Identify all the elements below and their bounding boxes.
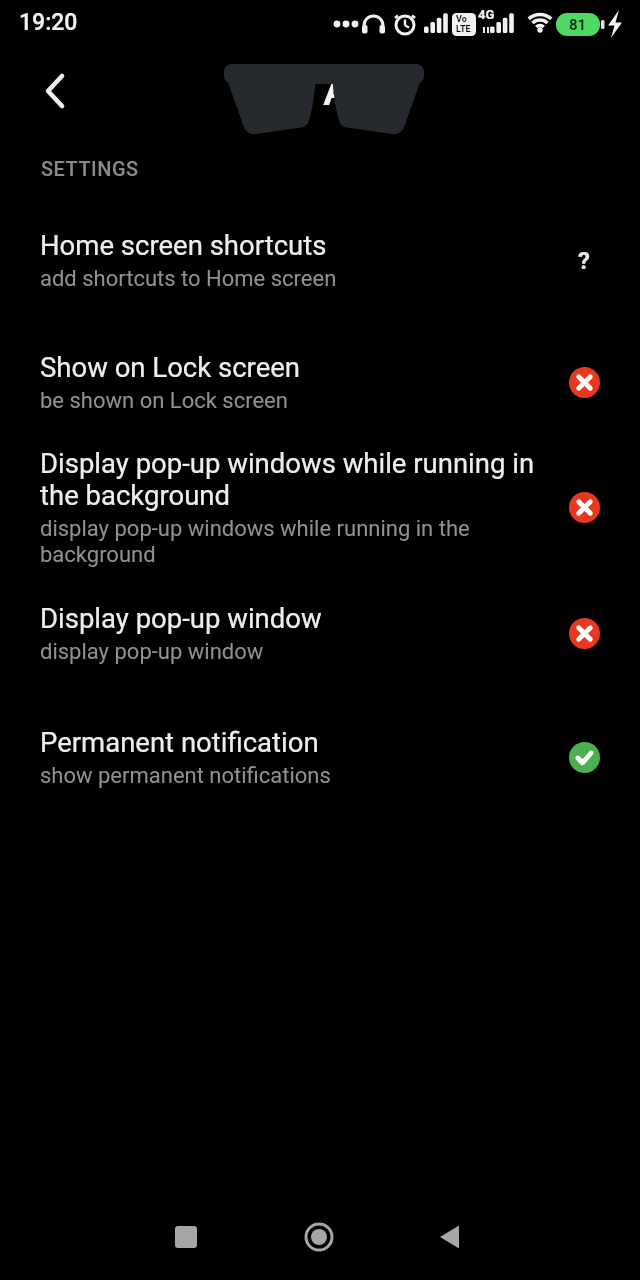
button[interactable] — [30, 65, 82, 117]
button[interactable]: Display pop-up window — [0, 602, 640, 665]
staticText: 19:20 — [19, 9, 78, 36]
staticText: ? — [578, 247, 590, 275]
button[interactable] — [293, 1211, 345, 1263]
button[interactable]: Show on Lock screen — [0, 351, 640, 414]
button[interactable]: Display pop-up windows while running in … — [0, 447, 640, 568]
staticText: 81 — [569, 16, 587, 34]
staticText: Permanent notification — [40, 726, 319, 758]
button[interactable]: Permanent notification — [0, 726, 640, 789]
staticText: display pop-up windows while running in … — [40, 516, 545, 568]
button[interactable]: Home screen shortcuts — [0, 229, 640, 292]
button[interactable] — [424, 1211, 476, 1263]
staticText: Show on Lock screen — [40, 351, 300, 383]
staticText: be shown on Lock screen — [40, 388, 288, 414]
staticText: Vo LTE — [456, 14, 471, 34]
staticText: Display pop-up windows while running in … — [40, 447, 545, 511]
staticText: Display pop-up window — [40, 602, 322, 634]
staticText: add shortcuts to Home screen — [40, 266, 337, 292]
staticText: 4G — [478, 7, 495, 22]
staticText: display pop-up window — [40, 639, 264, 665]
staticText: SETTINGS — [41, 157, 139, 180]
button[interactable] — [160, 1211, 212, 1263]
staticText: Home screen shortcuts — [40, 229, 327, 261]
staticText: show permanent notifications — [40, 763, 331, 789]
staticText: A — [323, 65, 352, 115]
